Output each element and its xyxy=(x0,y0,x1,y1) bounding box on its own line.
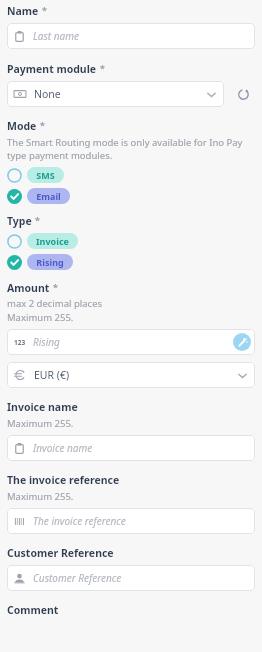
staticText: Comment xyxy=(7,603,59,617)
button[interactable]: Last name xyxy=(7,23,255,49)
button[interactable]: Refresh payment modules xyxy=(231,82,255,106)
staticText: Invoice name xyxy=(7,400,78,414)
staticText: None xyxy=(34,87,206,101)
staticText: SMS xyxy=(36,169,55,181)
staticText: * xyxy=(40,119,45,131)
staticText: Maximum 255. xyxy=(7,311,74,324)
staticText: Last name xyxy=(33,29,79,43)
staticText: Invoice name xyxy=(33,441,93,455)
button[interactable]: None xyxy=(7,81,224,107)
staticText: Name xyxy=(7,4,39,18)
staticText: Payment module xyxy=(7,62,97,76)
staticText: 123 xyxy=(14,338,26,347)
staticText: * xyxy=(53,281,58,293)
staticText: * xyxy=(35,214,40,226)
button[interactable]: Generate amount xyxy=(233,333,251,351)
button[interactable]: Invoice name xyxy=(7,435,255,461)
staticText: Rising xyxy=(36,256,64,268)
button[interactable]: SMS xyxy=(7,166,64,184)
staticText: Invoice xyxy=(36,235,69,247)
staticText: * xyxy=(100,62,105,74)
staticText: Mode xyxy=(7,119,37,133)
staticText: EUR (€) xyxy=(34,368,237,382)
staticText: Customer Reference xyxy=(33,571,122,585)
staticText: Email xyxy=(36,190,61,202)
staticText: * xyxy=(42,4,47,16)
button[interactable]: Email xyxy=(7,187,70,205)
staticText: Customer Reference xyxy=(7,546,114,560)
staticText: The Smart Routing mode is only available… xyxy=(7,136,243,162)
button[interactable]: EUR (€) xyxy=(7,362,255,388)
button[interactable]: The invoice reference xyxy=(7,508,255,534)
button[interactable]: Rising xyxy=(7,253,73,271)
button[interactable]: 123 xyxy=(7,329,255,355)
button[interactable]: Customer Reference xyxy=(7,565,255,591)
staticText: Maximum 255. xyxy=(7,417,74,430)
staticText: max 2 decimal places xyxy=(7,297,103,310)
staticText: The invoice reference xyxy=(33,514,126,528)
staticText: Rising xyxy=(33,335,248,349)
staticText: Amount xyxy=(7,281,50,295)
staticText: Type xyxy=(7,214,32,228)
staticText: Maximum 255. xyxy=(7,490,74,503)
staticText: The invoice reference xyxy=(7,473,120,487)
button[interactable]: Invoice xyxy=(7,232,78,250)
